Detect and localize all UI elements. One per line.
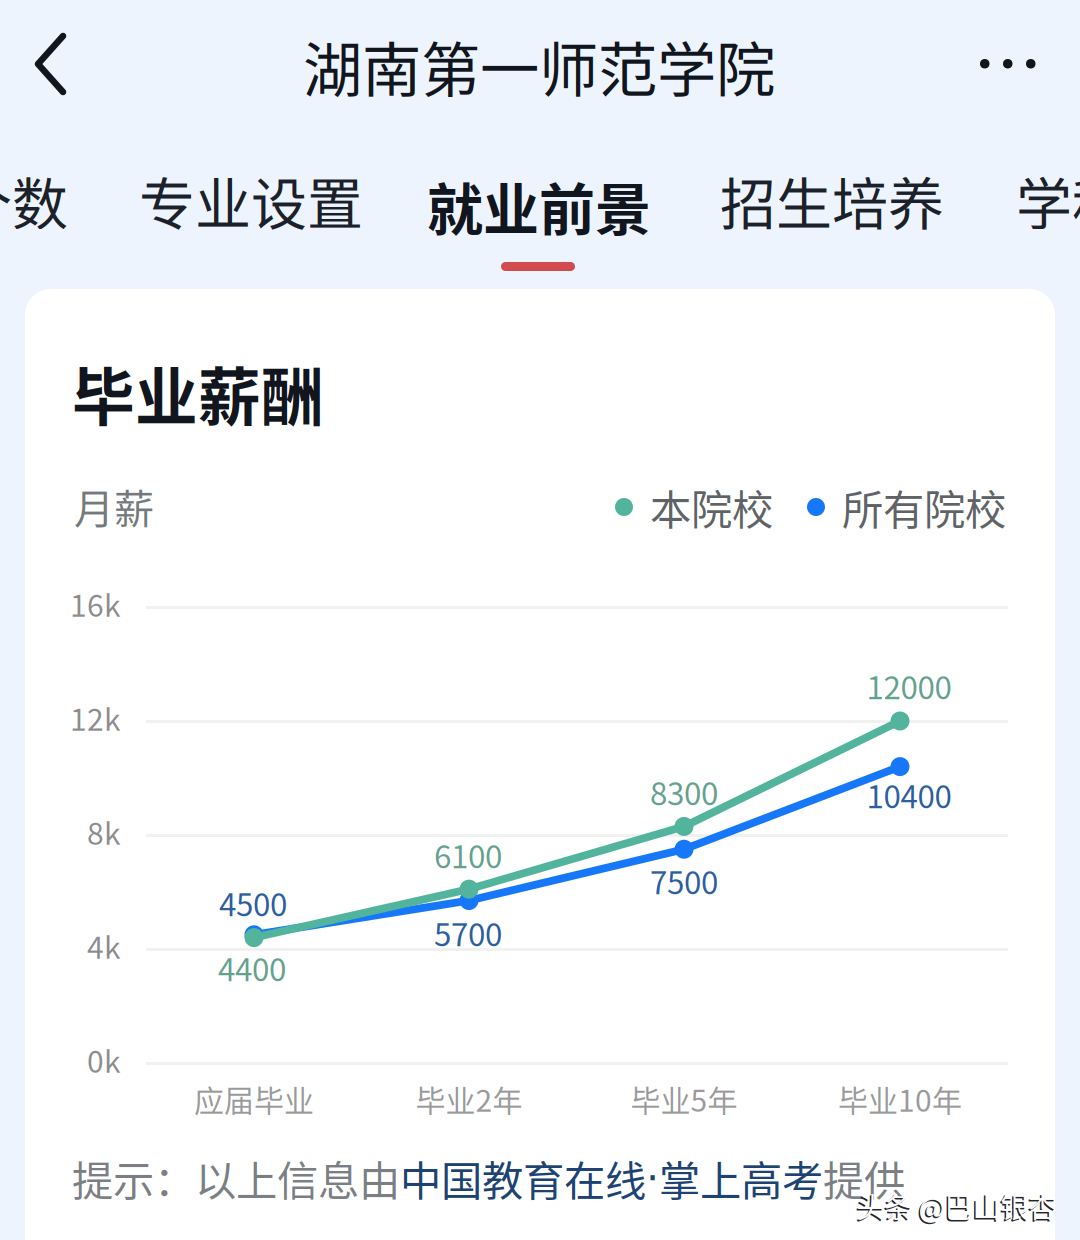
staticText: 就业前景	[427, 165, 651, 246]
button[interactable]: 专业设置	[139, 165, 369, 235]
staticText: 5700	[434, 910, 502, 955]
staticText: 个数	[0, 159, 68, 241]
staticText: 12000	[866, 663, 951, 708]
staticText: 学科	[1016, 159, 1080, 241]
staticText: 头条 @巴山银杏	[855, 1187, 1055, 1227]
staticText: 提示：以上信息由	[72, 1148, 400, 1208]
staticText: 招生培养	[720, 159, 944, 241]
staticText: 毕业10年	[838, 1077, 962, 1120]
staticText: ·	[646, 1154, 659, 1202]
button[interactable]: More menu	[964, 43, 1051, 84]
staticText: 头条 @巴山银杏	[857, 1185, 1057, 1226]
button[interactable]: 学科	[1016, 165, 1080, 235]
staticText: 10400	[866, 772, 951, 817]
staticText: 所有院校	[842, 477, 1006, 537]
button[interactable]: 就业前景	[427, 165, 653, 277]
button[interactable]: 个数	[0, 165, 68, 235]
staticText: 4k	[87, 924, 121, 967]
staticText: 月薪	[74, 477, 154, 535]
staticText: 应届毕业	[194, 1077, 314, 1120]
staticText: 6100	[434, 832, 502, 877]
staticText: 8300	[650, 769, 718, 814]
staticText: 12k	[70, 696, 121, 739]
staticText: 毕业5年	[630, 1077, 737, 1120]
staticText: 8k	[87, 810, 121, 853]
staticText: 本院校	[650, 477, 773, 537]
staticText: 专业设置	[139, 159, 363, 241]
staticText: 掌上高考	[659, 1148, 823, 1208]
staticText: 0k	[87, 1038, 121, 1081]
staticText: 湖南第一师范学院	[303, 23, 775, 109]
staticText: 7500	[650, 858, 718, 903]
staticText: 4400	[218, 945, 286, 990]
button[interactable]: 招生培养	[720, 165, 950, 235]
staticText: 4500	[219, 880, 287, 925]
button[interactable]: Back	[34, 32, 68, 96]
staticText: 毕业薪酬	[72, 347, 324, 438]
staticText: 16k	[70, 582, 121, 625]
staticText: 毕业2年	[415, 1077, 522, 1120]
staticText: 提供	[823, 1148, 905, 1208]
staticText: 中国教育在线	[400, 1148, 646, 1208]
